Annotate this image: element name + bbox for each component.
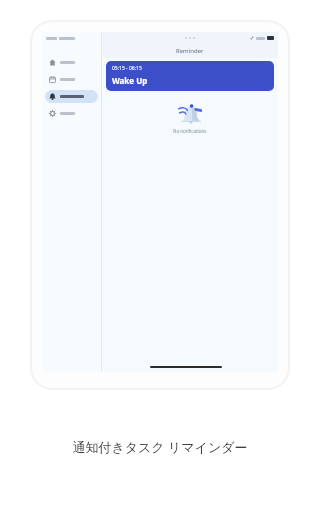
button[interactable] <box>45 56 98 69</box>
staticText: Reminder <box>176 47 204 55</box>
staticText: 05:15 - 06:15 <box>112 65 142 72</box>
button[interactable]: 05:15 - 06:15 <box>106 61 274 91</box>
staticText: Wake Up <box>112 75 148 86</box>
button[interactable] <box>45 107 98 120</box>
staticText: 通知付きタスク リマインダー <box>72 438 248 456</box>
button[interactable] <box>45 73 98 86</box>
staticText: No notifications <box>173 128 207 134</box>
other: No notifications illustration <box>177 100 203 126</box>
button[interactable] <box>45 90 98 103</box>
